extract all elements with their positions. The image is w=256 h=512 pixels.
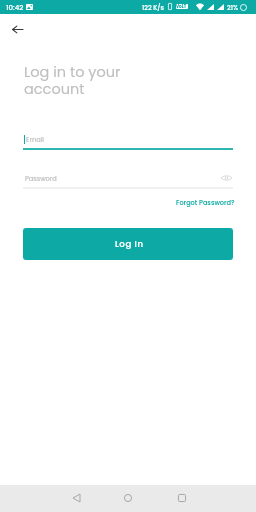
button[interactable]: Back xyxy=(64,486,88,510)
staticText: Log In xyxy=(115,238,144,250)
button[interactable]: Show password xyxy=(218,170,234,186)
staticText: Log in to your account xyxy=(24,62,121,100)
button[interactable]: Email xyxy=(23,130,233,150)
button[interactable]: Password xyxy=(23,170,233,189)
button[interactable]: Forgot Password? xyxy=(176,198,235,207)
staticText: 122 K/s xyxy=(142,3,165,12)
button[interactable]: Back xyxy=(5,17,29,41)
staticText: 10:42 xyxy=(6,3,24,13)
staticText: 21% xyxy=(227,3,238,12)
button[interactable]: Home xyxy=(116,486,140,510)
button[interactable]: Recent apps xyxy=(170,486,194,510)
staticText: VoLTE xyxy=(176,4,188,9)
button[interactable]: Log In xyxy=(23,228,233,260)
staticText: Password xyxy=(25,174,57,183)
staticText: Email xyxy=(26,135,44,144)
